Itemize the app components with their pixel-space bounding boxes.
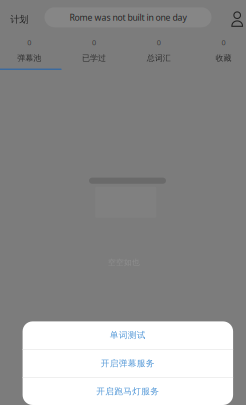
button[interactable]: 开启弹幕服务 (23, 349, 233, 377)
staticText: 0 (27, 37, 31, 47)
staticText: Rome was not built in one day (69, 11, 186, 23)
staticText: 计划 (10, 14, 28, 25)
button[interactable]: Rome was not built in one day (44, 7, 211, 27)
staticText: 开启弹幕服务 (101, 358, 155, 369)
staticText: 0 (92, 37, 96, 47)
staticText: 空空如也 (108, 258, 140, 267)
staticText: 开启跑马灯服务 (96, 386, 159, 397)
staticText: 单词测试 (110, 330, 146, 341)
staticText: 收藏 (215, 53, 231, 63)
button[interactable]: 0 (126, 33, 191, 70)
staticText: 0 (157, 37, 161, 47)
button[interactable]: 0 (0, 33, 62, 70)
button[interactable]: Profile (225, 0, 246, 33)
button[interactable]: 单词测试 (23, 321, 233, 349)
button[interactable]: 0 (191, 33, 246, 70)
button[interactable]: 计划 (0, 0, 34, 33)
button[interactable]: 开启跑马灯服务 (23, 377, 233, 405)
staticText: 弹幕池 (17, 53, 41, 63)
staticText: 已学过 (82, 53, 106, 63)
button[interactable]: 0 (62, 33, 126, 70)
staticText: 总词汇 (147, 53, 171, 63)
staticText: 0 (221, 37, 225, 47)
